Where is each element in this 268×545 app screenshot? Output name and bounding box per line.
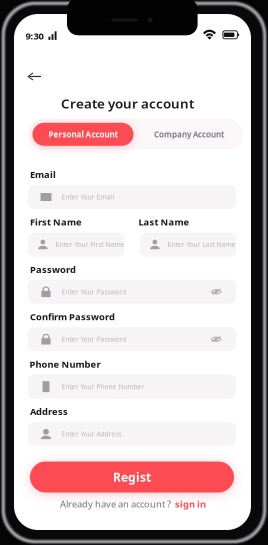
- button[interactable]: Enter Your Email: [28, 185, 236, 209]
- staticText: Enter Your Password: [62, 287, 127, 296]
- staticText: Company Account: [154, 129, 224, 140]
- staticText: Phone Number: [30, 358, 101, 370]
- button[interactable]: Enter Your First Name: [28, 232, 124, 256]
- staticText: Address: [30, 405, 68, 418]
- staticText: First Name: [30, 216, 82, 228]
- staticText: Enter Your Phone Number: [62, 382, 145, 391]
- staticText: Enter Your Password: [62, 335, 127, 344]
- button[interactable]: Enter Your Password: [28, 327, 236, 351]
- button[interactable]: Enter Your Phone Number: [28, 375, 236, 399]
- button[interactable]: Personal Account: [32, 123, 133, 146]
- button[interactable]: Back: [20, 64, 48, 88]
- button[interactable]: Enter Your Address: [28, 422, 236, 446]
- staticText: Password: [30, 263, 76, 275]
- button[interactable]: Regist: [30, 461, 234, 492]
- button[interactable]: Enter Your Password: [28, 280, 236, 304]
- button[interactable]: Enter Your Last Name: [140, 232, 236, 256]
- staticText: Email: [30, 168, 56, 181]
- staticText: Confirm Password: [30, 310, 115, 323]
- button[interactable]: Company Account: [138, 123, 239, 146]
- staticText: Enter Your Address: [62, 430, 122, 438]
- staticText: 9:30: [25, 30, 43, 42]
- staticText: Already have an account ?: [60, 498, 171, 510]
- staticText: Enter Your Last Name: [168, 240, 236, 249]
- button[interactable]: Already have an account ?: [60, 498, 206, 510]
- staticText: Create your account: [61, 94, 194, 112]
- staticText: Regist: [113, 469, 151, 485]
- staticText: Enter Your Email: [62, 193, 115, 201]
- staticText: sign in: [175, 498, 206, 510]
- staticText: Enter Your First Name: [56, 240, 125, 249]
- staticText: Personal Account: [48, 129, 117, 140]
- staticText: Last Name: [139, 216, 190, 228]
